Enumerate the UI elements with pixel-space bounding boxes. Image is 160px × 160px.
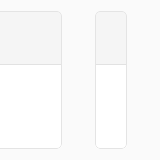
button[interactable]: Previous card [0, 11, 62, 149]
button[interactable]: Next card [95, 11, 127, 149]
